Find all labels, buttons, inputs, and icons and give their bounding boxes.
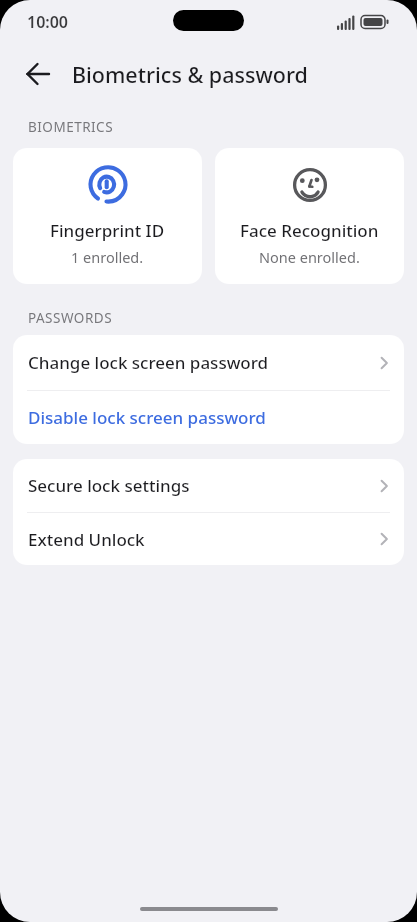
staticText: 1 enrolled. xyxy=(71,247,144,267)
staticText: BIOMETRICS xyxy=(28,118,114,136)
staticText: Fingerprint ID xyxy=(50,219,165,242)
button[interactable]: Fingerprint ID xyxy=(13,148,202,284)
staticText: Change lock screen password xyxy=(28,351,378,374)
staticText: PASSWORDS xyxy=(28,309,113,327)
staticText: Biometrics & password xyxy=(72,60,308,89)
staticText: None enrolled. xyxy=(259,247,360,267)
button[interactable]: Extend Unlock xyxy=(13,513,404,565)
button[interactable]: Face Recognition xyxy=(215,148,404,284)
staticText: Disable lock screen password xyxy=(28,406,390,429)
button[interactable]: Change lock screen password xyxy=(13,335,404,390)
staticText: Face Recognition xyxy=(240,219,379,242)
button[interactable] xyxy=(16,52,60,96)
button[interactable]: Disable lock screen password xyxy=(13,391,404,444)
staticText: Secure lock settings xyxy=(28,474,378,497)
staticText: Extend Unlock xyxy=(28,528,378,551)
button[interactable]: Secure lock settings xyxy=(13,459,404,512)
staticText: 10:00 xyxy=(27,11,69,33)
